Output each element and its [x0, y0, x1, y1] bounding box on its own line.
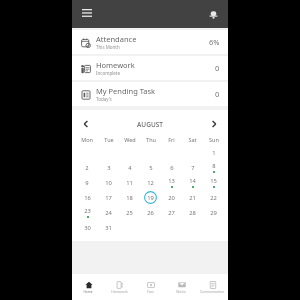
button[interactable]: My Pending Task: [72, 82, 228, 106]
staticText: 28: [189, 209, 196, 217]
button[interactable]: 12: [140, 175, 161, 190]
staticText: 2: [85, 164, 89, 172]
staticText: 7: [191, 164, 195, 172]
staticText: 30: [84, 224, 91, 232]
staticText: 29: [210, 209, 217, 217]
staticText: 0: [215, 63, 220, 73]
button[interactable]: Fees: [135, 278, 165, 296]
button[interactable]: Communication: [197, 278, 227, 296]
staticText: This Month: [96, 44, 120, 50]
button[interactable]: Next month: [206, 116, 222, 132]
button[interactable]: 28: [182, 205, 203, 220]
staticText: 22: [210, 194, 217, 202]
button[interactable]: Home: [73, 278, 103, 296]
button[interactable]: 26: [140, 205, 161, 220]
staticText: Tue: [104, 136, 114, 143]
staticText: 3: [107, 164, 111, 172]
button[interactable]: Menu: [78, 5, 96, 23]
button[interactable]: 20: [161, 190, 182, 205]
button[interactable]: 18: [119, 190, 140, 205]
button[interactable]: 29: [203, 205, 224, 220]
staticText: Mon: [81, 136, 93, 143]
button[interactable]: 15: [203, 175, 224, 190]
staticText: Homework: [96, 60, 135, 70]
staticText: 23: [84, 207, 91, 215]
staticText: 21: [189, 194, 196, 202]
button[interactable]: Homework: [72, 56, 228, 80]
staticText: 5: [149, 164, 153, 172]
button[interactable]: Notifications: [204, 5, 222, 23]
button[interactable]: 10: [98, 175, 119, 190]
staticText: 31: [105, 224, 112, 232]
staticText: 27: [168, 209, 175, 217]
staticText: AUGUST: [94, 120, 206, 129]
button[interactable]: 31: [98, 220, 119, 235]
button[interactable]: 13: [161, 175, 182, 190]
staticText: 13: [168, 177, 175, 185]
button[interactable]: 9: [76, 175, 98, 190]
button[interactable]: 16: [76, 190, 98, 205]
staticText: 25: [126, 209, 133, 217]
button[interactable]: Previous month: [78, 116, 94, 132]
staticText: 15: [210, 177, 217, 185]
staticText: 6%: [209, 37, 220, 47]
staticText: 0: [215, 89, 220, 99]
button[interactable]: Notice: [166, 278, 196, 296]
staticText: Communication: [200, 290, 224, 294]
button[interactable]: 22: [203, 190, 224, 205]
button[interactable]: Attendance: [72, 30, 228, 54]
button[interactable]: 17: [98, 190, 119, 205]
button[interactable]: 2: [76, 160, 98, 175]
staticText: Notice: [176, 290, 186, 294]
staticText: 11: [126, 179, 133, 187]
staticText: 8: [212, 162, 216, 170]
staticText: 19: [147, 194, 154, 202]
staticText: 4: [128, 164, 132, 172]
button[interactable]: 4: [119, 160, 140, 175]
staticText: My Pending Task: [96, 86, 156, 96]
staticText: 24: [105, 209, 112, 217]
staticText: Fees: [147, 290, 154, 294]
staticText: Thu: [146, 136, 156, 143]
staticText: Attendance: [96, 34, 137, 44]
staticText: 20: [168, 194, 175, 202]
staticText: Sat: [188, 136, 197, 143]
staticText: 26: [147, 209, 154, 217]
button[interactable]: 7: [182, 160, 203, 175]
button[interactable]: 11: [119, 175, 140, 190]
staticText: 6: [170, 164, 174, 172]
button[interactable]: 30: [76, 220, 98, 235]
button[interactable]: 25: [119, 205, 140, 220]
staticText: Sun: [209, 136, 219, 143]
button[interactable]: 3: [98, 160, 119, 175]
staticText: 10: [105, 179, 112, 187]
staticText: 14: [189, 177, 196, 185]
staticText: 1: [212, 149, 216, 157]
staticText: 16: [84, 194, 91, 202]
staticText: 17: [105, 194, 112, 202]
staticText: 18: [126, 194, 133, 202]
staticText: 12: [147, 179, 154, 187]
button[interactable]: 1: [203, 145, 224, 160]
button[interactable]: 14: [182, 175, 203, 190]
button[interactable]: 19: [140, 190, 161, 205]
staticText: Homework: [111, 290, 128, 294]
button[interactable]: 8: [203, 160, 224, 175]
staticText: Wed: [124, 136, 136, 143]
button[interactable]: 21: [182, 190, 203, 205]
button[interactable]: 6: [161, 160, 182, 175]
button[interactable]: 24: [98, 205, 119, 220]
button[interactable]: 27: [161, 205, 182, 220]
staticText: Home: [83, 290, 93, 294]
staticText: Fri: [168, 136, 175, 143]
staticText: Incomplete: [96, 70, 121, 76]
button[interactable]: 5: [140, 160, 161, 175]
staticText: 9: [85, 179, 89, 187]
staticText: Today's: [96, 96, 112, 102]
button[interactable]: Homework: [104, 278, 134, 296]
button[interactable]: 23: [76, 205, 98, 220]
